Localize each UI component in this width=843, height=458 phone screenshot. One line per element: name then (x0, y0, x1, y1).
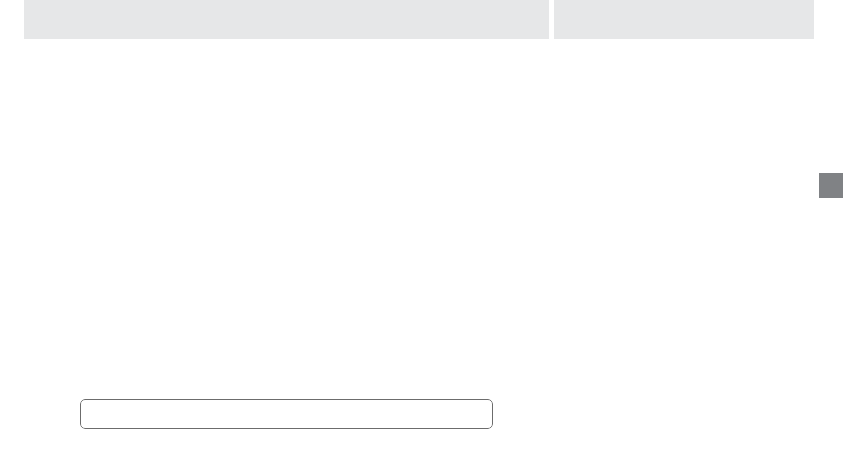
button[interactable]: Text field (80, 399, 493, 429)
